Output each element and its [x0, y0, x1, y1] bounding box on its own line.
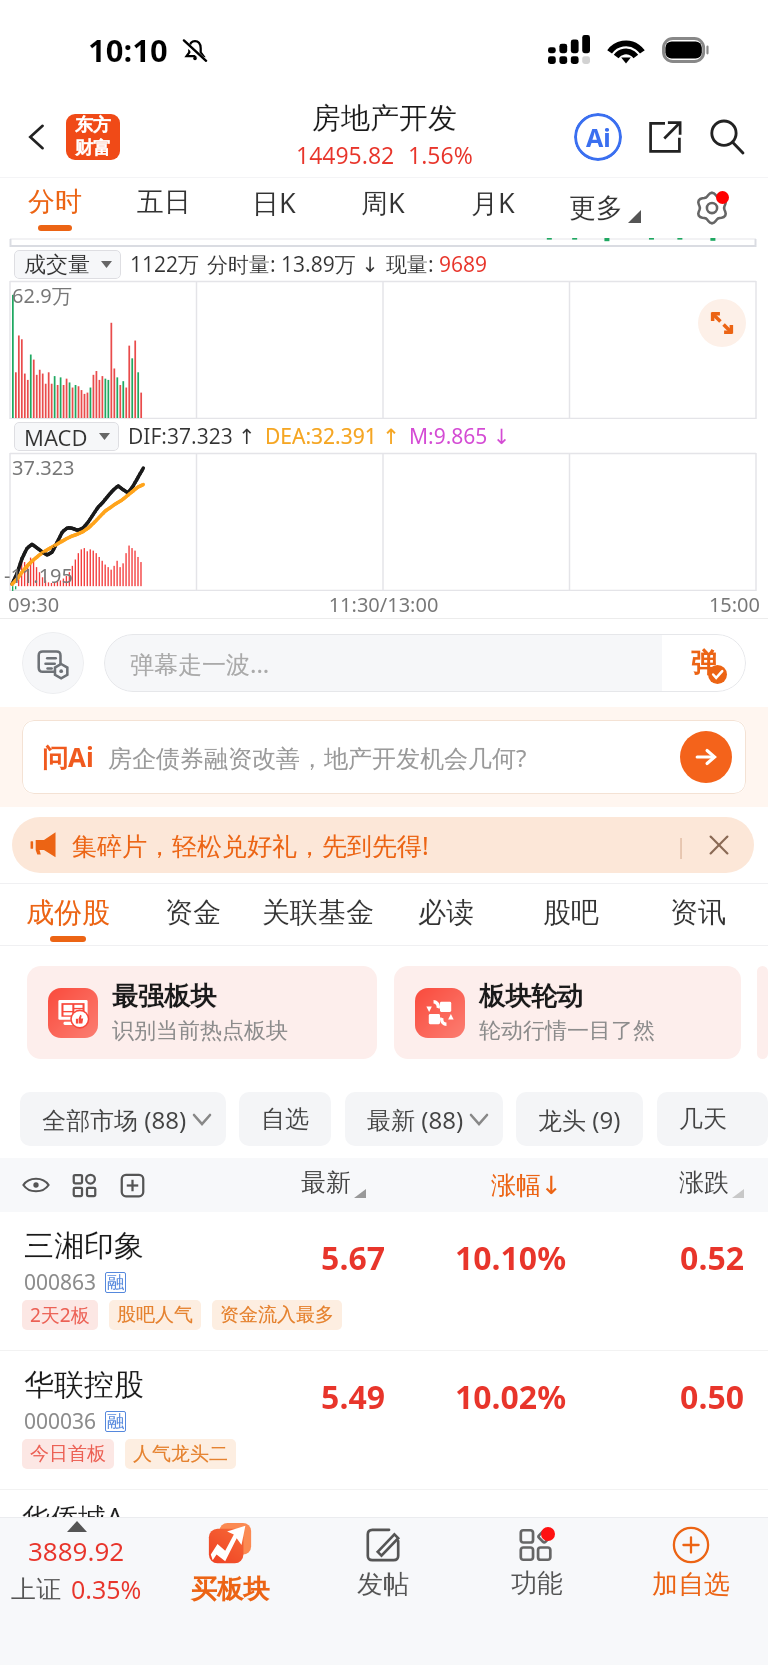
- staticText: 房地产开发: [312, 100, 457, 137]
- staticText: 买板块: [191, 1573, 269, 1606]
- button[interactable]: 三湘印象: [0, 1212, 768, 1351]
- button[interactable]: 最新 (88): [345, 1092, 503, 1146]
- button[interactable]: Search: [702, 112, 752, 162]
- button[interactable]: 买板块: [153, 1518, 306, 1608]
- staticText: 融: [107, 1272, 124, 1293]
- staticText: 涨跌: [679, 1167, 729, 1198]
- button[interactable]: East Money: [66, 114, 120, 160]
- staticText: ↓: [541, 1171, 562, 1200]
- staticText: 2天2板: [30, 1302, 90, 1328]
- button[interactable]: 资讯: [636, 883, 760, 946]
- staticText: 涨幅: [491, 1170, 541, 1201]
- staticText: 10.02%: [385, 1375, 566, 1419]
- button[interactable]: Send danmu: [662, 634, 746, 692]
- staticText: M:9.865 ↓: [409, 422, 511, 451]
- button[interactable]: Back: [14, 114, 60, 160]
- button[interactable]: 五日: [110, 178, 218, 238]
- staticText: 更多: [569, 191, 623, 225]
- button[interactable]: 弹幕走一波...: [104, 634, 746, 692]
- staticText: 3889.92: [28, 1533, 125, 1568]
- button[interactable]: 最强板块: [27, 966, 377, 1059]
- staticText: 14495.82: [296, 139, 395, 170]
- staticText: 集碎片，轻松兑好礼，先到先得!: [72, 828, 675, 862]
- staticText: 融: [107, 1411, 124, 1432]
- button[interactable]: 股吧: [509, 883, 633, 946]
- button[interactable]: 发帖: [306, 1518, 460, 1608]
- staticText: 1122万: [130, 250, 200, 279]
- staticText: -11.195: [4, 562, 73, 589]
- staticText: 今日首板: [30, 1442, 106, 1466]
- staticText: 成交量: [24, 251, 90, 279]
- button[interactable]: 华联控股: [0, 1351, 768, 1490]
- button[interactable]: 3889.92: [0, 1518, 153, 1608]
- staticText: 发帖: [357, 1568, 409, 1601]
- button[interactable]: 板块轮动: [394, 966, 741, 1059]
- button[interactable]: 几天几板: [657, 1092, 768, 1146]
- button[interactable]: 更多: [548, 178, 662, 238]
- staticText: 关联基金: [262, 895, 374, 930]
- button[interactable]: 资金: [131, 883, 255, 946]
- staticText: 分时量: 13.89万 ↓: [207, 250, 379, 279]
- button[interactable]: 全部市场 (88): [20, 1092, 226, 1146]
- staticText: |: [675, 830, 688, 860]
- button[interactable]: 加自选: [614, 1518, 768, 1608]
- button[interactable]: Watch: [18, 1167, 54, 1203]
- staticText: 周K: [361, 184, 405, 221]
- staticText: 自选: [261, 1104, 309, 1134]
- staticText: 股吧人气: [117, 1303, 193, 1327]
- button[interactable]: 成交量: [14, 250, 121, 279]
- staticText: 000863: [24, 1268, 97, 1297]
- staticText: 10:10: [88, 29, 168, 71]
- button[interactable]: 问Ai: [22, 720, 746, 794]
- staticText: 最新: [301, 1167, 351, 1198]
- staticText: 全部市场 (88): [42, 1103, 187, 1136]
- button[interactable]: MACD: [14, 422, 119, 451]
- button[interactable]: 日K: [220, 178, 328, 238]
- button[interactable]: Fullscreen chart: [698, 299, 746, 347]
- staticText: 9689: [439, 250, 488, 279]
- staticText: 房企债券融资改善，地产开发机会几何?: [108, 741, 680, 774]
- staticText: 股吧: [543, 895, 599, 930]
- staticText: 09:30: [8, 591, 258, 618]
- staticText: 分时: [28, 185, 82, 219]
- button[interactable]: AI assistant: [572, 111, 624, 163]
- button[interactable]: Layout: [66, 1167, 102, 1203]
- button[interactable]: 成份股: [6, 883, 130, 946]
- staticText: 现量:: [386, 250, 434, 279]
- button[interactable]: 关联基金: [256, 883, 380, 946]
- staticText: 财富: [75, 137, 111, 160]
- staticText: 弹幕走一波...: [130, 647, 662, 680]
- staticText: 11:30/13:00: [258, 591, 509, 618]
- button[interactable]: Ask AI: [680, 731, 732, 783]
- staticText: 15:00: [509, 591, 760, 618]
- staticText: 37.323: [12, 454, 75, 481]
- staticText: 5.49: [250, 1375, 385, 1419]
- button[interactable]: Add: [114, 1167, 150, 1203]
- button[interactable]: Share: [640, 112, 690, 162]
- staticText: 几天几板: [679, 1104, 746, 1134]
- button[interactable]: 周K: [329, 178, 437, 238]
- button[interactable]: 自选: [239, 1092, 331, 1146]
- button[interactable]: Close: [702, 828, 736, 862]
- staticText: 成份股: [26, 895, 110, 930]
- staticText: 000036: [24, 1407, 97, 1436]
- staticText: 华侨城A: [22, 1498, 124, 1517]
- button[interactable]: 龙头 (9): [516, 1092, 643, 1146]
- button[interactable]: Danmu settings: [22, 632, 84, 694]
- staticText: MACD: [24, 422, 88, 451]
- button[interactable]: 月K: [439, 178, 547, 238]
- staticText: 日K: [252, 184, 296, 221]
- button[interactable]: 功能: [460, 1518, 614, 1608]
- button[interactable]: 必读: [384, 883, 508, 946]
- button[interactable]: 集碎片，轻松兑好礼，先到先得!: [12, 817, 754, 873]
- staticText: 轮动行情一目了然: [479, 1017, 655, 1045]
- staticText: 三湘印象: [24, 1227, 144, 1265]
- staticText: 0.52: [566, 1236, 744, 1280]
- staticText: 人气龙头二: [133, 1442, 228, 1466]
- button[interactable]: Settings: [670, 178, 754, 238]
- staticText: 最新 (88): [367, 1103, 464, 1136]
- staticText: 必读: [418, 895, 474, 930]
- staticText: 上证: [11, 1574, 61, 1605]
- button[interactable]: 分时: [1, 178, 109, 238]
- staticText: 加自选: [652, 1568, 730, 1601]
